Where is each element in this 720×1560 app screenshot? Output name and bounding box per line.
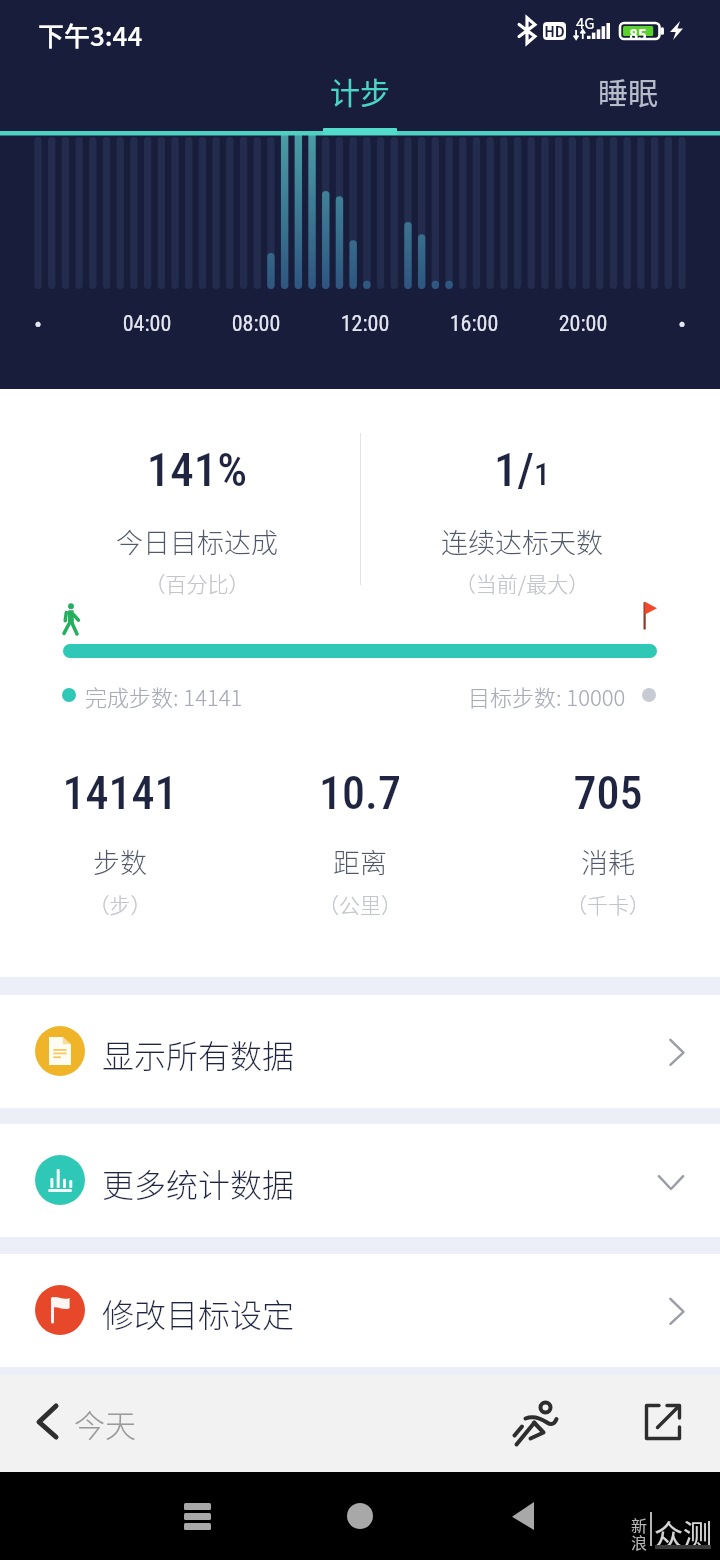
staticText: 12:00 <box>305 311 425 337</box>
staticText: 4G <box>576 12 595 34</box>
staticText: （千卡） <box>498 889 718 919</box>
staticText: 20:00 <box>523 311 643 337</box>
staticText: （当前/最大） <box>422 568 622 598</box>
staticText: 08:00 <box>196 311 316 337</box>
button[interactable]: 今天 <box>20 1392 136 1454</box>
staticText: 下午3:44 <box>38 16 143 54</box>
button[interactable]: Back <box>495 1488 551 1544</box>
staticText: （公里） <box>250 889 470 919</box>
staticText: 1 <box>534 455 550 493</box>
staticText: 目标步数: 10000 <box>468 680 626 712</box>
staticText: 修改目标设定 <box>102 1290 295 1336</box>
staticText: 计步 <box>285 69 435 112</box>
button[interactable]: 计步 <box>285 64 435 136</box>
staticText: 新 <box>631 1513 648 1536</box>
staticText: 步数 <box>10 842 230 881</box>
staticText: HD <box>544 22 565 39</box>
staticText: • <box>0 311 98 339</box>
staticText: 04:00 <box>87 311 207 337</box>
staticText: （步） <box>10 889 230 919</box>
button[interactable]: 显示所有数据 <box>0 995 720 1108</box>
staticText: 14141 <box>10 766 230 820</box>
staticText: 705 <box>498 766 718 820</box>
staticText: 更多统计数据 <box>102 1160 295 1206</box>
button[interactable]: 睡眠 <box>553 64 703 126</box>
staticText: 今日目标达成 <box>97 522 297 561</box>
staticText: 10.7 <box>250 766 470 820</box>
button[interactable]: 更多统计数据 <box>0 1124 720 1237</box>
staticText: 众测 <box>654 1512 713 1554</box>
button[interactable]: 修改目标设定 <box>0 1254 720 1367</box>
button[interactable]: Activity <box>505 1395 567 1457</box>
button[interactable]: Home <box>332 1488 388 1544</box>
staticText: 睡眠 <box>553 69 703 112</box>
staticText: 连续达标天数 <box>422 522 622 561</box>
staticText: 141% <box>97 442 297 497</box>
staticText: 16:00 <box>414 311 534 337</box>
button[interactable]: Share <box>640 1398 688 1446</box>
staticText: 距离 <box>250 842 470 881</box>
button[interactable]: Recent apps <box>169 1488 225 1544</box>
staticText: （百分比） <box>97 568 297 598</box>
staticText: 85 <box>624 23 652 39</box>
staticText: 消耗 <box>498 842 718 881</box>
staticText: 1/ <box>494 442 534 497</box>
staticText: 显示所有数据 <box>102 1031 295 1077</box>
staticText: 今天 <box>74 1401 136 1446</box>
staticText: 浪 <box>631 1530 648 1553</box>
staticText: • <box>622 311 720 339</box>
staticText: 完成步数: 14141 <box>85 680 243 712</box>
